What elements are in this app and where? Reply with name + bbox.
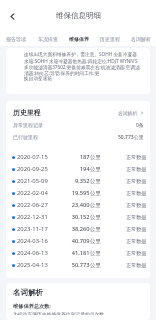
staticText: 40,709公里 bbox=[61, 237, 101, 245]
staticText: 名词解析 bbox=[131, 36, 151, 42]
staticText: 2024-03-16 bbox=[17, 237, 48, 245]
staticText: 连续出现大面积维修养护，需注意。SOHH 全新冷凝器水箱;SOHH 水箱冷凝器散… bbox=[24, 51, 140, 82]
staticText: 2021-05-09 bbox=[17, 177, 48, 185]
staticText: 历史里程 bbox=[100, 36, 120, 42]
staticText: 正常数据 bbox=[126, 262, 147, 268]
staticText: 车况排查 bbox=[38, 36, 58, 42]
staticText: 正常数据 bbox=[126, 190, 147, 196]
button[interactable]: 车况排查 bbox=[32, 36, 63, 42]
staticText: 正常数据 bbox=[126, 178, 147, 184]
button[interactable]: 名词解析 bbox=[125, 36, 156, 42]
button[interactable]: 报告导读 bbox=[0, 36, 32, 42]
staticText: 2020-07-15 bbox=[17, 153, 48, 161]
staticText: 38,260公里 bbox=[61, 225, 101, 233]
button[interactable]: 历史里程 bbox=[94, 36, 125, 42]
staticText: 名词解析 bbox=[13, 288, 43, 297]
staticText: 维修保养总次数: bbox=[13, 302, 51, 309]
staticText: 19,595公里 bbox=[61, 189, 101, 197]
staticText: 正常数据 bbox=[126, 226, 147, 232]
staticText: 历史里程 bbox=[13, 108, 41, 117]
staticText: 正常数据 bbox=[126, 238, 147, 244]
staticText: 23,400公里 bbox=[61, 201, 101, 209]
staticText: 2024-06-13 bbox=[17, 249, 48, 257]
staticText: 异常里程记录 bbox=[13, 122, 43, 128]
staticText: 2022-06-27 bbox=[17, 201, 48, 209]
staticText: 41,181公里 bbox=[61, 249, 101, 257]
staticText: 正常数据 bbox=[126, 154, 147, 160]
staticText: 维修保养 bbox=[69, 36, 89, 42]
button[interactable]: 名词解析 bbox=[118, 110, 144, 116]
staticText: 为机动车辆历史维修保养信息记录的总次数 bbox=[13, 311, 105, 315]
staticText: 9,352公里 bbox=[61, 177, 101, 185]
staticText: 2022-02-04 bbox=[17, 189, 48, 197]
staticText: 正常数据 bbox=[126, 214, 147, 220]
staticText: 2025-04-13 bbox=[17, 261, 48, 269]
staticText: 2020-09-25 bbox=[17, 165, 48, 173]
staticText: 50,773公里 bbox=[61, 261, 101, 269]
staticText: 正常数据 bbox=[126, 202, 147, 208]
staticText: 已行驶里程 bbox=[13, 134, 38, 140]
staticText: 0条 bbox=[136, 122, 144, 129]
staticText: 2023-11-17 bbox=[17, 225, 48, 233]
staticText: 报告导读 bbox=[6, 36, 26, 42]
staticText: 正常数据 bbox=[126, 166, 147, 172]
staticText: 名词解析 bbox=[118, 110, 138, 116]
staticText: 50,773公里 bbox=[118, 134, 144, 141]
staticText: 正常数据 bbox=[126, 250, 147, 256]
staticText: 187公里 bbox=[61, 153, 101, 161]
staticText: 2022-12-31 bbox=[17, 213, 48, 221]
button[interactable]: 维修保养 bbox=[63, 36, 94, 42]
staticText: 194公里 bbox=[61, 165, 101, 173]
staticText: 维保信息明细 bbox=[56, 11, 101, 20]
button[interactable]: Back bbox=[4, 8, 20, 24]
staticText: 30,152公里 bbox=[61, 213, 101, 221]
